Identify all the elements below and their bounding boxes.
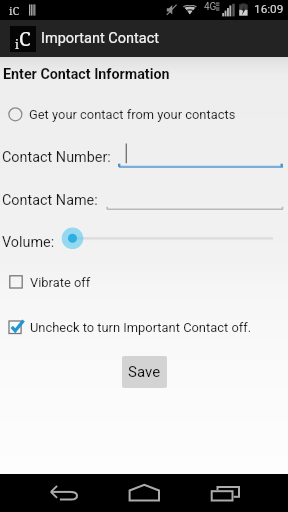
staticText: Contact Name: [2, 192, 98, 209]
staticText: i [15, 36, 19, 52]
staticText: C [19, 26, 31, 52]
staticText: Uncheck to turn Important Contact off. [30, 320, 252, 335]
staticText: iC [9, 3, 20, 18]
button[interactable]: Back [40, 477, 88, 509]
button[interactable]: Get your contact from your contacts [0, 103, 288, 129]
button[interactable]: Uncheck to turn Important Contact off. [0, 314, 288, 340]
staticText: Get your contact from your contacts [29, 107, 236, 122]
staticText: 4G [204, 1, 217, 13]
staticText: Contact Number: [2, 149, 111, 166]
staticText: Save [128, 363, 161, 381]
button[interactable]: Save [122, 356, 167, 388]
staticText: 16:09 [254, 2, 284, 16]
staticText: Vibrate off [30, 275, 91, 290]
button[interactable]: Home [120, 477, 168, 509]
button[interactable]: Vibrate off [0, 269, 288, 295]
staticText: Enter Contact Information [3, 66, 170, 83]
staticText: Important Contact [41, 30, 159, 47]
staticText: Volume: [2, 234, 55, 251]
button[interactable]: Recent apps [202, 477, 250, 509]
